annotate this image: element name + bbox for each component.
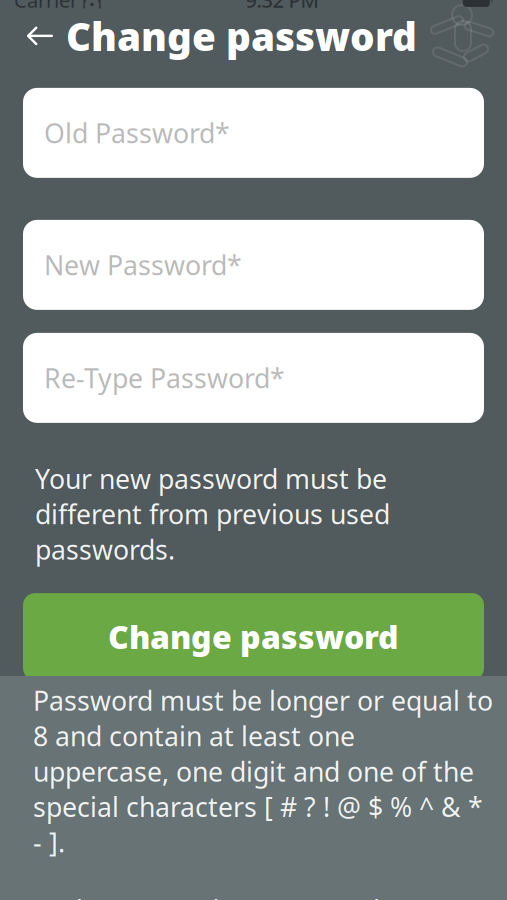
- button[interactable]: Old Password*: [23, 88, 484, 178]
- button[interactable]: Back: [18, 16, 62, 56]
- staticText: Your new password must be different from…: [35, 461, 390, 567]
- button[interactable]: Change password: [23, 593, 484, 680]
- staticText: Change password: [108, 615, 399, 658]
- staticText: 9:32 PM: [245, 0, 318, 13]
- staticText: New Password*: [44, 247, 242, 283]
- button[interactable]: New Password*: [23, 220, 484, 310]
- staticText: Both passwords must match.: [33, 892, 396, 900]
- staticText: Change password: [66, 10, 417, 61]
- staticText: Password must be longer or equal to 8 an…: [33, 683, 493, 860]
- staticText: Carrier: [14, 0, 78, 13]
- button[interactable]: Re-Type Password*: [23, 333, 484, 423]
- staticText: Old Password*: [44, 115, 230, 151]
- staticText: Re-Type Password*: [44, 360, 285, 396]
